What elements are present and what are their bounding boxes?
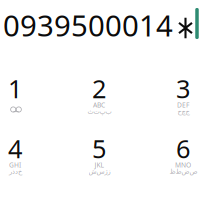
staticText: JKL <box>94 161 103 169</box>
button[interactable]: Dial 3 <box>0 0 200 200</box>
staticText: 6 <box>176 132 190 165</box>
staticText: 0939500014 <box>3 5 173 44</box>
button[interactable]: Dial 5 <box>0 0 200 200</box>
staticText: ب‌پ‌ت‌ث <box>87 108 111 115</box>
staticText: خ‌د‌ذ‌ر <box>8 168 21 175</box>
button[interactable]: Dial 1 <box>0 0 200 200</box>
staticText: ج‌چ‌ح <box>177 108 189 115</box>
staticText: GHI <box>9 161 21 169</box>
staticText: 5 <box>92 132 106 165</box>
staticText: 1 <box>8 72 22 105</box>
button[interactable]: Dial 6 <box>0 0 200 200</box>
button[interactable]: Dial 4 <box>0 0 200 200</box>
staticText: 3 <box>176 72 190 105</box>
staticText: DEF <box>177 101 189 109</box>
staticText: 4 <box>8 132 22 165</box>
button[interactable]: Phone number entry field <box>0 0 200 200</box>
staticText: MNO <box>175 161 191 169</box>
button[interactable]: Dial 2 <box>0 0 200 200</box>
staticText: ص‌ض‌ط‌ظ <box>169 168 197 175</box>
staticText: 2 <box>92 72 106 105</box>
staticText: ز‌ژ‌س‌ش <box>88 168 110 175</box>
staticText: ABC <box>93 101 105 109</box>
